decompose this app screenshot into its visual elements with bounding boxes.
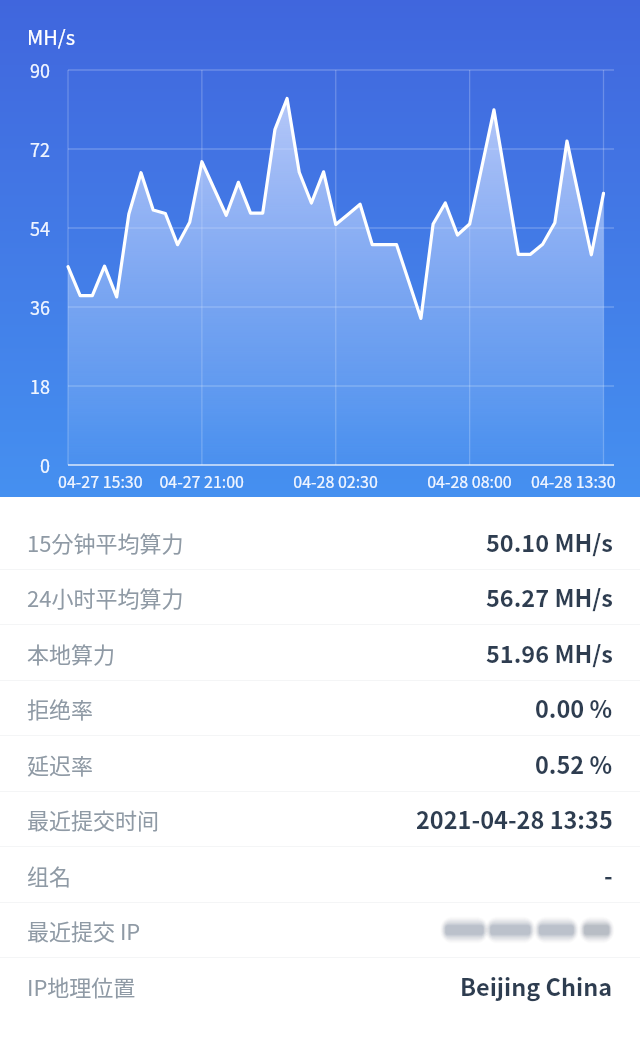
staticText: 24小时平均算力 [27, 581, 184, 613]
staticText: 拒绝率 [27, 692, 94, 724]
staticText: 15分钟平均算力 [27, 526, 184, 558]
staticText: 51.96 MH/s [486, 636, 613, 670]
button[interactable]: IP地理位置 [0, 958, 640, 1014]
button[interactable]: 24小时平均算力 [0, 569, 640, 625]
button[interactable]: 最近提交 IP [0, 902, 640, 958]
button[interactable]: 15分钟平均算力 [0, 514, 640, 570]
button[interactable]: 本地算力 [0, 625, 640, 681]
staticText: 0.52 % [535, 747, 613, 781]
staticText: IP地理位置 [27, 970, 136, 1002]
staticText: 最近提交时间 [27, 803, 160, 835]
staticText: 延迟率 [27, 748, 94, 780]
staticText: 56.27 MH/s [486, 580, 613, 614]
staticText: 0.00 % [535, 691, 613, 725]
button[interactable]: 延迟率 [0, 736, 640, 792]
staticText: - [604, 858, 613, 892]
staticText: 2021-04-28 13:35 [416, 802, 613, 836]
staticText: 本地算力 [27, 637, 116, 669]
button[interactable]: 组名 [0, 847, 640, 903]
staticText: 最近提交 IP [27, 914, 141, 946]
staticText: 组名 [27, 859, 72, 891]
button[interactable]: 拒绝率 [0, 680, 640, 736]
staticText: 50.10 MH/s [486, 525, 613, 559]
staticText: Beijing China [460, 969, 613, 1003]
button[interactable]: 最近提交时间 [0, 791, 640, 847]
